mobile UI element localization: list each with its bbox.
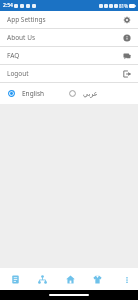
staticText: 2:54: [3, 2, 13, 9]
button[interactable]: Logout: [0, 65, 138, 82]
button[interactable]: English: [0, 83, 69, 104]
button[interactable]: Network: [30, 268, 54, 290]
button[interactable]: Home: [58, 268, 82, 290]
staticText: FAQ: [7, 51, 123, 60]
button[interactable]: About Us: [0, 29, 138, 46]
staticText: English: [22, 89, 45, 98]
staticText: عربي: [83, 90, 98, 98]
button[interactable]: Profile: [85, 268, 109, 290]
button[interactable]: Orders: [3, 268, 27, 290]
button[interactable]: FAQ: [0, 47, 138, 64]
button[interactable]: عربي: [69, 83, 138, 104]
staticText: App Settings: [7, 15, 123, 24]
button[interactable]: App Settings: [0, 11, 138, 28]
staticText: Logout: [7, 69, 123, 78]
button[interactable]: More options: [119, 272, 134, 287]
staticText: 81%: [119, 3, 128, 9]
staticText: About Us: [7, 33, 123, 42]
